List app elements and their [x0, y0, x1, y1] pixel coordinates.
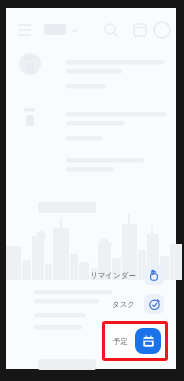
staticText: リマインダー	[90, 271, 136, 280]
other: 予定を追加	[135, 328, 161, 354]
button[interactable]: タスクを追加	[108, 293, 168, 315]
button[interactable]: 予定	[105, 324, 165, 358]
staticText: 予定	[113, 337, 128, 346]
staticText: タスク	[112, 300, 136, 309]
button[interactable]: リマインダーを追加	[86, 264, 168, 286]
